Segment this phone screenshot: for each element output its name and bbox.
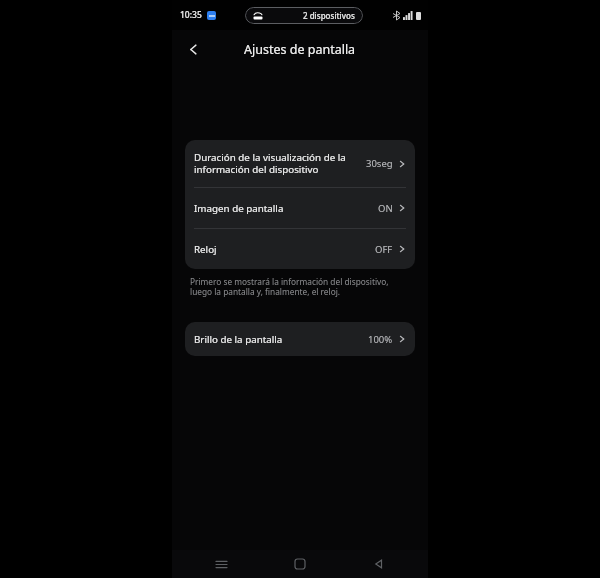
staticText: Reloj: [194, 243, 217, 256]
staticText: 30seg: [366, 157, 393, 170]
button[interactable]: Atrás: [366, 551, 392, 577]
button[interactable]: Atrás: [180, 36, 206, 62]
button[interactable]: Brillo de la pantalla: [185, 322, 415, 356]
staticText: Duración de la visualización de la infor…: [194, 151, 360, 176]
button[interactable]: Recientes: [208, 551, 234, 577]
staticText: 100%: [368, 333, 393, 346]
staticText: Brillo de la pantalla: [194, 333, 283, 346]
staticText: MANIACOS.COM: [321, 194, 396, 206]
staticText: Ajustes de pantalla: [244, 41, 356, 58]
button[interactable]: Inicio: [287, 551, 313, 577]
button[interactable]: Duración de la visualización de la infor…: [185, 140, 415, 187]
staticText: Primero se mostrará la información del d…: [190, 276, 410, 298]
other: Dispositivos: [253, 11, 263, 21]
staticText: Imagen de pantalla: [194, 202, 284, 215]
button[interactable]: Dispositivos: [245, 7, 363, 24]
button[interactable]: Reloj: [185, 229, 415, 269]
button[interactable]: Imagen de pantalla: [185, 188, 415, 228]
staticText: ON: [378, 202, 393, 215]
staticText: HARD: [347, 164, 403, 190]
staticText: 2 dispositivos: [303, 10, 355, 21]
staticText: OFF: [375, 243, 393, 256]
staticText: 10:35: [180, 9, 202, 21]
